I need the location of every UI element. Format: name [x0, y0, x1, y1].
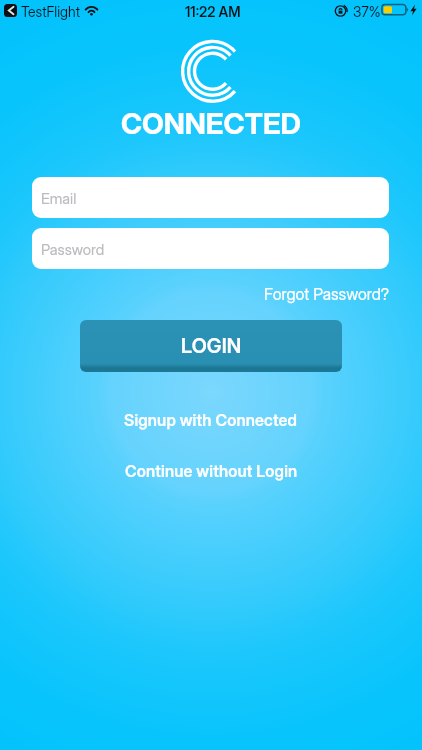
staticText: 11:22 AM	[185, 3, 241, 20]
button[interactable]: Email	[32, 177, 389, 218]
staticText: CONNECTED	[121, 106, 301, 141]
staticText: TestFlight	[21, 3, 81, 20]
staticText: Continue without Login	[125, 461, 298, 480]
staticText: Forgot Password?	[264, 284, 390, 303]
button[interactable]: LOGIN	[80, 320, 342, 372]
button[interactable]: Signup with Connected	[120, 407, 302, 432]
staticText: Email	[41, 189, 77, 207]
staticText: Signup with Connected	[124, 410, 298, 429]
button[interactable]: Password	[32, 228, 389, 269]
staticText: LOGIN	[181, 334, 242, 358]
button[interactable]: Back to TestFlight	[4, 4, 17, 17]
button[interactable]: Continue without Login	[121, 458, 302, 483]
staticText: Password	[41, 240, 105, 258]
staticText: 37%	[353, 3, 381, 20]
button[interactable]: Forgot Password?	[262, 282, 392, 305]
